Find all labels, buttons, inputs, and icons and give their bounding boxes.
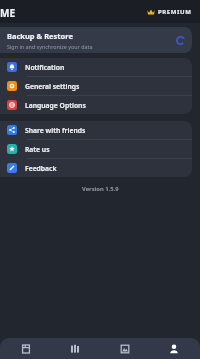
- button[interactable]: Notification: [0, 58, 192, 76]
- button[interactable]: Share with friends: [0, 121, 192, 139]
- staticText: Language Options: [25, 101, 86, 110]
- staticText: PREMIUM: [158, 8, 192, 16]
- staticText: Feedback: [25, 164, 57, 173]
- button[interactable]: Feedback: [0, 159, 192, 177]
- button[interactable]: Rate us: [0, 140, 192, 158]
- staticText: Version 1.5.9: [82, 185, 119, 193]
- staticText: Sign in and synchronize your data: [7, 43, 93, 50]
- button[interactable]: Profile: [150, 338, 198, 359]
- button[interactable]: General settings: [0, 77, 192, 95]
- button[interactable]: Backup & Restore: [0, 27, 192, 53]
- staticText: General settings: [25, 82, 80, 91]
- button[interactable]: Library: [2, 338, 50, 359]
- other: Sync: [176, 36, 185, 45]
- staticText: ME: [0, 6, 16, 20]
- button[interactable]: Store: [101, 338, 149, 359]
- button[interactable]: Shelf: [51, 338, 99, 359]
- button[interactable]: Language Options: [0, 96, 192, 114]
- staticText: Rate us: [25, 145, 50, 154]
- button[interactable]: Premium: [145, 6, 194, 18]
- staticText: Notification: [25, 63, 65, 72]
- staticText: Share with friends: [25, 126, 86, 135]
- staticText: Backup & Restore: [7, 31, 73, 41]
- other: Premium: [147, 8, 155, 16]
